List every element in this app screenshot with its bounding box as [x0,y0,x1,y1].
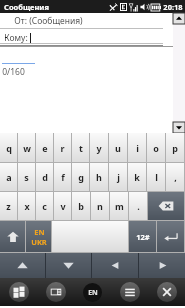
button[interactable]: b [72,192,90,220]
staticText: a [6,171,12,183]
button[interactable]: , [166,163,184,191]
staticText: p [172,142,178,154]
button[interactable]: q [0,133,17,162]
staticText: m [115,200,124,212]
button[interactable]: w [18,133,35,162]
button[interactable]: r [54,133,71,162]
staticText: . [137,200,140,212]
staticText: c [42,200,47,212]
button[interactable]: Left [92,253,138,278]
button[interactable]: Shift [0,221,25,252]
button[interactable]: t [72,133,89,162]
staticText: y [96,142,102,154]
button[interactable]: i [128,133,146,162]
staticText: n [97,200,103,212]
staticText: v [60,200,66,212]
staticText: w [23,142,31,154]
staticText: s [24,171,29,183]
staticText: k [134,171,140,183]
button[interactable]: h [90,163,108,191]
button[interactable]: o [147,133,165,162]
button[interactable]: d [36,163,53,191]
staticText: b [78,200,84,212]
staticText: x [24,200,30,212]
staticText: 0/160 [2,66,25,78]
staticText: e [42,142,48,154]
button[interactable]: a [0,163,17,191]
button[interactable]: g [72,163,89,191]
staticText: g [78,171,84,183]
button[interactable]: Start [0,278,37,306]
button[interactable]: k [128,163,146,191]
staticText: z [6,200,11,212]
staticText: i [136,142,139,154]
button[interactable]: v [54,192,71,220]
button[interactable] [52,221,128,252]
staticText: f [61,171,65,183]
button[interactable]: Scroll [173,13,185,133]
button[interactable]: Кому: [0,29,185,46]
button[interactable]: Up [0,253,45,278]
button[interactable]: Language EN UKR [26,221,51,252]
button[interactable]: p [166,133,184,162]
button[interactable]: e [36,133,53,162]
button[interactable]: От: (Сообщения) [0,13,185,29]
staticText: EN [34,227,45,237]
button[interactable]: Down [46,253,91,278]
staticText: h [96,171,102,183]
button[interactable]: s [18,163,35,191]
button[interactable]: Enter [157,221,184,252]
staticText: l [155,171,158,183]
button[interactable]: l [147,163,165,191]
button[interactable]: EN [74,278,111,306]
button[interactable]: Menu [111,278,148,306]
staticText: EN [88,288,98,298]
staticText: 20:18 [163,2,183,12]
button[interactable]: j [109,163,127,191]
staticText: 12# [136,232,150,242]
button[interactable]: Сообщения [0,0,185,13]
button[interactable]: u [109,133,127,162]
button[interactable]: m [110,192,128,220]
button[interactable]: x [18,192,35,220]
button[interactable]: Messaging [37,278,74,306]
staticText: От: (Сообщения) [14,15,83,27]
staticText: o [153,142,159,154]
staticText: t [79,142,83,154]
button[interactable]: Numbers and symbols [129,221,156,252]
button[interactable]: z [0,192,17,220]
staticText: j [117,171,120,183]
button[interactable]: Backspace [148,192,184,220]
button[interactable]: . [129,192,147,220]
staticText: q [6,142,12,154]
button[interactable]: f [54,163,71,191]
staticText: UKR [31,237,47,247]
button[interactable]: n [91,192,109,220]
staticText: , [174,171,177,183]
button[interactable]: Close [148,278,185,306]
staticText: Кому: [4,32,28,44]
staticText: r [60,142,65,154]
button[interactable]: Right [139,253,185,278]
button[interactable]: c [36,192,53,220]
button[interactable]: y [90,133,108,162]
staticText: u [115,142,121,154]
staticText: d [42,171,48,183]
staticText: Сообщения [4,2,49,12]
